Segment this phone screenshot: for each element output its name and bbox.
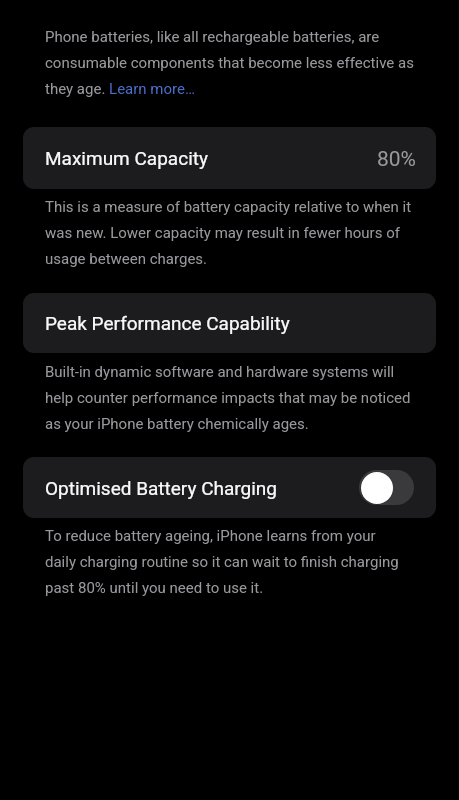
button[interactable]: Maximum Capacity, 80% [23,127,436,189]
button[interactable]: Phone batteries, like all rechargeable b… [45,21,414,99]
staticText: To reduce battery ageing, iPhone learns … [45,520,410,598]
button[interactable]: Optimised Battery Charging [23,457,436,518]
staticText: Peak Performance Capability [45,312,290,334]
staticText: Maximum Capacity [45,147,208,169]
button[interactable]: Optimised Battery Charging, off [359,470,414,505]
staticText: 80% [377,147,416,172]
staticText: Built-in dynamic software and hardware s… [45,356,414,434]
staticText: This is a measure of battery capacity re… [45,191,414,269]
button[interactable]: Peak Performance Capability [23,293,436,353]
staticText: Optimised Battery Charging [45,477,278,499]
